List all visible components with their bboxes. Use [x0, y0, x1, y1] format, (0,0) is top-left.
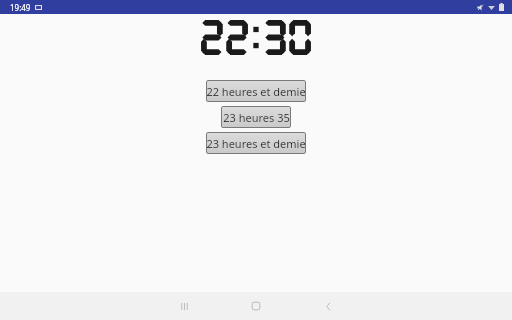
button[interactable]: Recent apps — [148, 292, 220, 320]
staticText: 23 heures et demie — [206, 136, 306, 151]
staticText: 23 heures 35 — [223, 110, 290, 125]
button[interactable]: 23 heures 35 — [221, 106, 291, 128]
button[interactable]: 23 heures et demie — [206, 132, 306, 154]
button[interactable]: Home — [220, 292, 292, 320]
button[interactable]: 22 heures et demie — [206, 80, 306, 102]
staticText: 22 heures et demie — [206, 84, 306, 99]
staticText: 19:49 — [10, 2, 31, 13]
